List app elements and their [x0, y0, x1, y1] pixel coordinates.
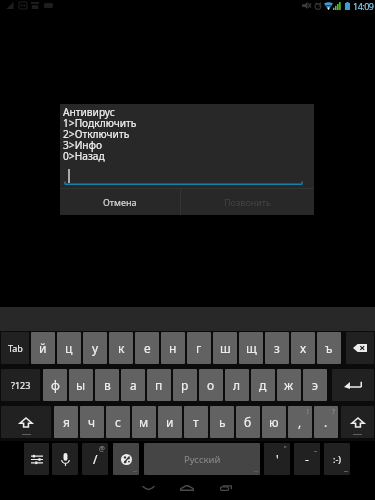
button[interactable]: Позвонить [181, 189, 314, 215]
button[interactable]: т [184, 406, 208, 438]
staticText: щ [246, 340, 257, 356]
staticText: _ [314, 444, 317, 453]
staticText: д [259, 377, 267, 393]
button[interactable]: к [109, 332, 133, 364]
button[interactable]: н [161, 332, 185, 364]
staticText: г [196, 340, 202, 356]
button[interactable]: Change language [113, 443, 139, 475]
button[interactable]: ?123 [1, 369, 40, 401]
staticText: Антивирус 1>Подключить 2>Отключить 3>Инф… [63, 105, 137, 163]
staticText: ! [307, 407, 309, 416]
button[interactable]: у [83, 332, 107, 364]
button[interactable]: а [121, 369, 145, 401]
button[interactable]: й [31, 332, 55, 364]
button[interactable]: Shift [341, 406, 374, 438]
button[interactable]: Shift [1, 406, 51, 438]
button[interactable]: я [54, 406, 78, 438]
button[interactable]: г [187, 332, 211, 364]
staticText: ь [219, 414, 226, 430]
staticText: ?123 [11, 379, 31, 391]
button[interactable]: ж [277, 369, 301, 401]
button[interactable]: , [288, 406, 312, 438]
button[interactable]: Back [128, 476, 168, 500]
staticText: , [298, 414, 302, 430]
staticText: х [300, 340, 307, 356]
staticText: с [115, 414, 121, 430]
button[interactable]: ч [80, 406, 104, 438]
staticText: @ [99, 444, 105, 453]
button[interactable]: Keyboard settings [24, 443, 49, 475]
button[interactable]: ' [264, 443, 290, 475]
button[interactable]: ъ [317, 332, 341, 364]
button[interactable]: ц [57, 332, 81, 364]
staticText: ъ [325, 340, 333, 356]
staticText: - [305, 451, 309, 467]
button[interactable]: - [294, 443, 320, 475]
button[interactable]: д [251, 369, 275, 401]
staticText: й [39, 340, 47, 356]
button[interactable]: . [314, 406, 338, 438]
staticText: " [284, 444, 287, 453]
staticText: а [130, 377, 137, 393]
button[interactable]: Recents [206, 476, 246, 500]
button[interactable]: / [82, 443, 108, 475]
button[interactable]: Русский [144, 443, 260, 475]
staticText: о [207, 377, 215, 393]
staticText: Позвонить [224, 196, 271, 208]
staticText: я [63, 414, 70, 430]
button[interactable]: Enter [332, 369, 374, 401]
staticText: н [169, 340, 177, 356]
button[interactable]: ы [69, 369, 93, 401]
staticText: Русский [184, 453, 221, 466]
button[interactable]: х [291, 332, 315, 364]
staticText: Tab [8, 342, 23, 354]
button[interactable]: и [158, 406, 182, 438]
staticText: т [193, 414, 199, 430]
staticText: 14:09 [353, 0, 374, 12]
staticText: ' [276, 451, 279, 467]
staticText: р [181, 377, 189, 393]
staticText: б [244, 414, 252, 430]
button[interactable]: о [199, 369, 223, 401]
button[interactable]: с [106, 406, 130, 438]
staticText: . [324, 414, 328, 430]
button[interactable]: з [265, 332, 289, 364]
staticText: е [144, 340, 151, 356]
staticText: п [155, 377, 163, 393]
staticText: ж [284, 377, 294, 393]
button[interactable]: Tab [1, 332, 29, 364]
staticText: ш [220, 340, 231, 356]
button[interactable]: п [147, 369, 171, 401]
button[interactable]: м [132, 406, 156, 438]
button[interactable]: в [95, 369, 119, 401]
button[interactable]: л [225, 369, 249, 401]
button[interactable]: Voice input [52, 443, 78, 475]
staticText: ы [76, 377, 86, 393]
staticText: у [92, 340, 99, 356]
staticText: ? [332, 407, 335, 416]
button[interactable]: ш [213, 332, 237, 364]
staticText: в [104, 377, 111, 393]
button[interactable]: :-) [324, 443, 350, 475]
staticText: / [93, 451, 98, 467]
button[interactable]: ю [262, 406, 286, 438]
staticText: ф [51, 377, 60, 393]
button[interactable]: е [135, 332, 159, 364]
button[interactable]: Backspace [346, 332, 374, 364]
staticText: и [166, 414, 174, 430]
button[interactable]: Home [167, 476, 207, 500]
button[interactable]: ф [43, 369, 67, 401]
button[interactable]: б [236, 406, 260, 438]
staticText: ю [269, 414, 279, 430]
button[interactable]: р [173, 369, 197, 401]
staticText: л [233, 377, 241, 393]
button[interactable]: э [303, 369, 327, 401]
staticText: ц [65, 340, 73, 356]
button[interactable]: щ [239, 332, 263, 364]
staticText: ч [88, 414, 96, 430]
staticText: :-) [333, 453, 342, 465]
button[interactable]: ь [210, 406, 234, 438]
staticText: м [139, 414, 149, 430]
staticText: к [118, 340, 125, 356]
button[interactable]: Отмена [60, 189, 180, 215]
